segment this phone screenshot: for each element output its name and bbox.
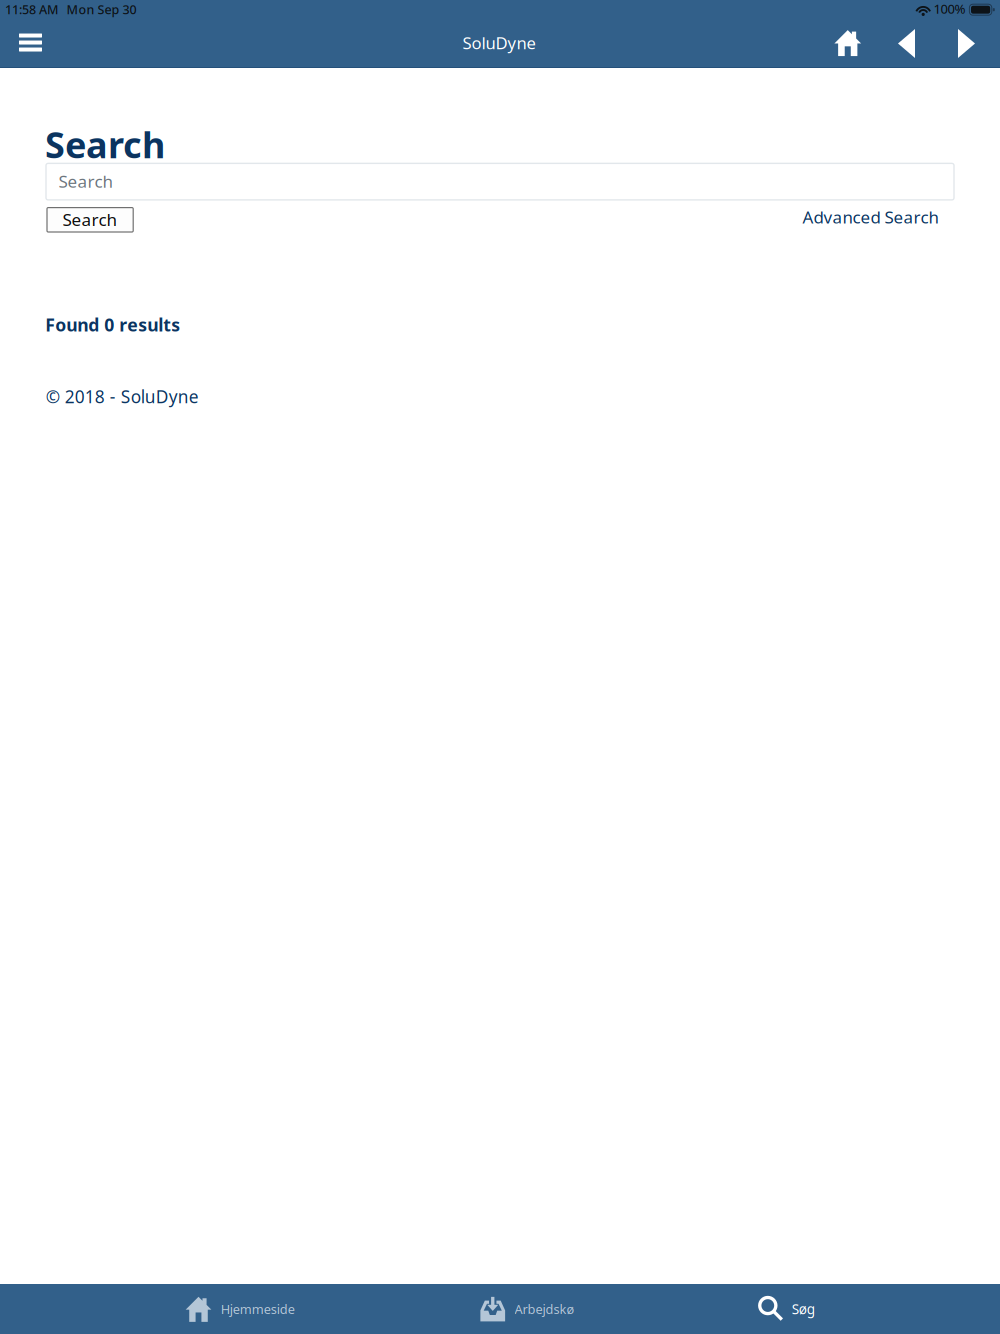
staticText: Hjemmeside <box>221 1300 295 1318</box>
staticText: Mon Sep 30 <box>66 1 136 18</box>
button[interactable]: Arbejdskø <box>480 1284 574 1334</box>
staticText: 11:58 AM <box>5 1 59 18</box>
staticText: Advanced Search <box>802 205 938 228</box>
button[interactable]: Advanced Search <box>800 204 940 229</box>
staticText: © 2018 - SoluDyne <box>46 385 199 408</box>
button[interactable]: Search <box>47 208 133 232</box>
staticText: Search <box>45 120 165 169</box>
staticText: Søg <box>792 1300 815 1318</box>
button[interactable]: Hjemmeside <box>185 1284 295 1334</box>
staticText: Arbejdskø <box>514 1300 574 1318</box>
button[interactable]: Forward <box>942 20 991 66</box>
button[interactable]: Home <box>822 19 873 66</box>
button[interactable]: Søg <box>760 1284 815 1334</box>
staticText: SoluDyne <box>462 31 535 54</box>
button[interactable]: Menu <box>8 21 53 63</box>
button[interactable]: Back <box>882 20 931 66</box>
staticText: 100% <box>933 0 965 18</box>
staticText: Search <box>63 208 118 231</box>
staticText: Search <box>58 169 113 193</box>
staticText: Found 0 results <box>45 313 180 337</box>
